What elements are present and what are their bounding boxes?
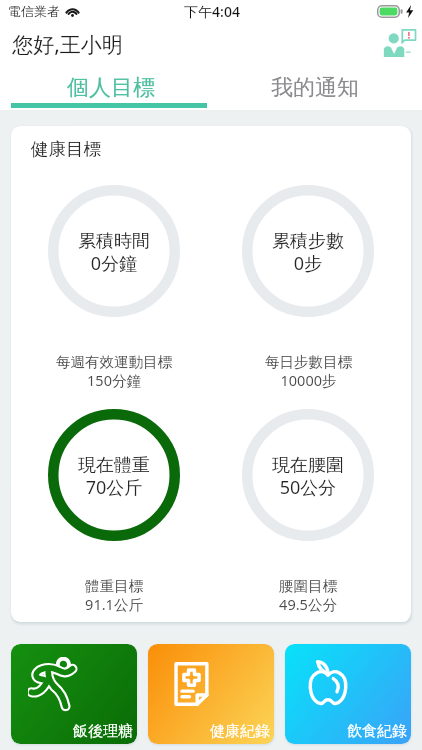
button[interactable]: 我的通知 <box>211 69 422 107</box>
staticText: 現在腰圍 50公分 <box>272 454 344 499</box>
button[interactable]: 累積步數 0步 <box>213 185 403 390</box>
staticText: 現在體重 70公斤 <box>78 454 150 499</box>
button[interactable]: 累積時間 0分鐘 <box>19 185 209 390</box>
staticText: 下午4:04 <box>184 2 240 21</box>
staticText: 每週有效運動目標 150分鐘 <box>56 353 172 390</box>
staticText: 健康紀錄 <box>210 722 270 741</box>
staticText: 電信業者 <box>8 3 60 19</box>
staticText: 每日步數目標 10000步 <box>265 353 352 390</box>
button[interactable]: 健康紀錄 <box>148 644 274 744</box>
staticText: 我的通知 <box>271 74 359 102</box>
staticText: 體重目標 91.1公斤 <box>85 577 143 614</box>
staticText: 累積時間 0分鐘 <box>78 230 150 275</box>
button[interactable]: 個人目標 <box>0 69 211 107</box>
staticText: 個人目標 <box>67 74 155 102</box>
staticText: 健康目標 <box>31 138 101 160</box>
staticText: 腰圍目標 49.5公分 <box>279 577 337 614</box>
button[interactable]: 通知 <box>381 23 417 59</box>
button[interactable]: 現在體重 70公斤 <box>19 409 209 614</box>
staticText: 您好,王小明 <box>12 30 123 59</box>
button[interactable]: 飲食紀錄 <box>285 644 411 744</box>
button[interactable]: 飯後理糖 <box>11 644 137 744</box>
staticText: 累積步數 0步 <box>272 230 344 275</box>
staticText: 飲食紀錄 <box>347 722 407 741</box>
button[interactable]: 現在腰圍 50公分 <box>213 409 403 614</box>
staticText: 飯後理糖 <box>73 722 133 741</box>
